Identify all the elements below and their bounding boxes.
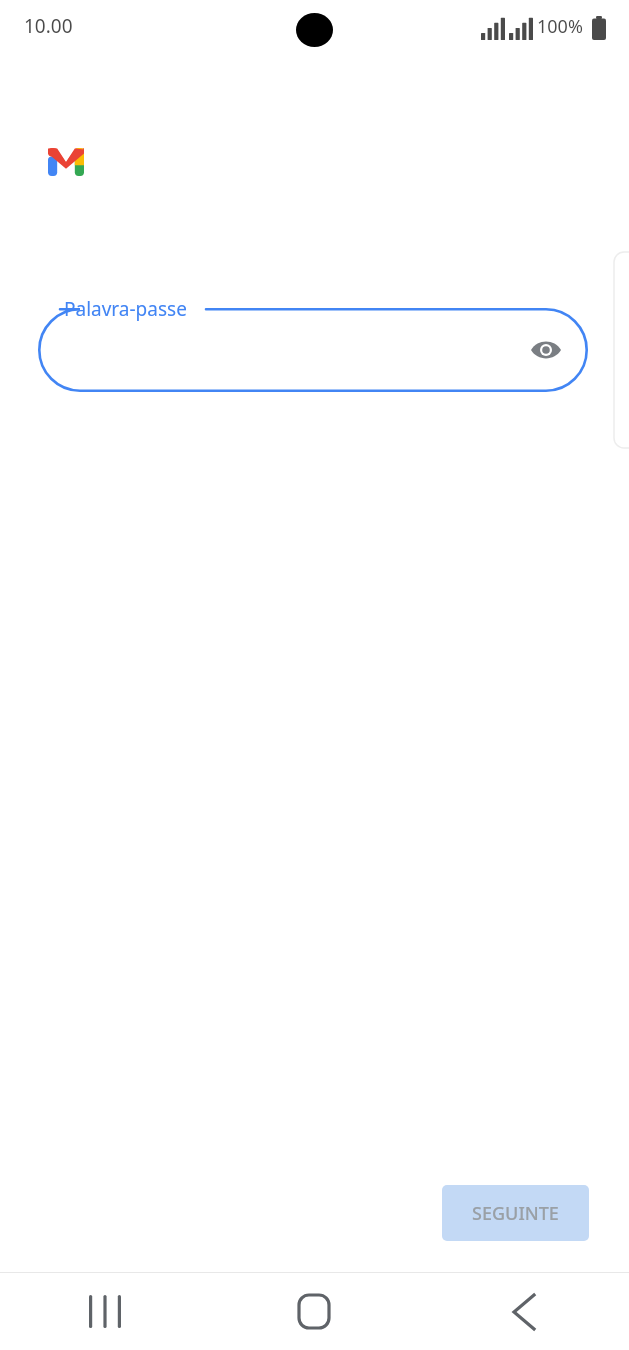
other: Gmail	[48, 148, 84, 176]
staticText: 100%	[537, 14, 583, 39]
button[interactable]: Recentes	[0, 1273, 209, 1350]
button[interactable]: SEGUINTE	[442, 1185, 589, 1241]
button[interactable]: Voltar	[419, 1273, 629, 1350]
button[interactable]: Mostrar palavra-passe	[38, 308, 588, 392]
staticText: 10.00	[24, 13, 73, 39]
button[interactable]: Mostrar palavra-passe	[524, 328, 568, 372]
button[interactable]: Início	[209, 1273, 419, 1350]
staticText: Palavra-passe	[64, 296, 187, 322]
staticText: SEGUINTE	[472, 1201, 559, 1226]
